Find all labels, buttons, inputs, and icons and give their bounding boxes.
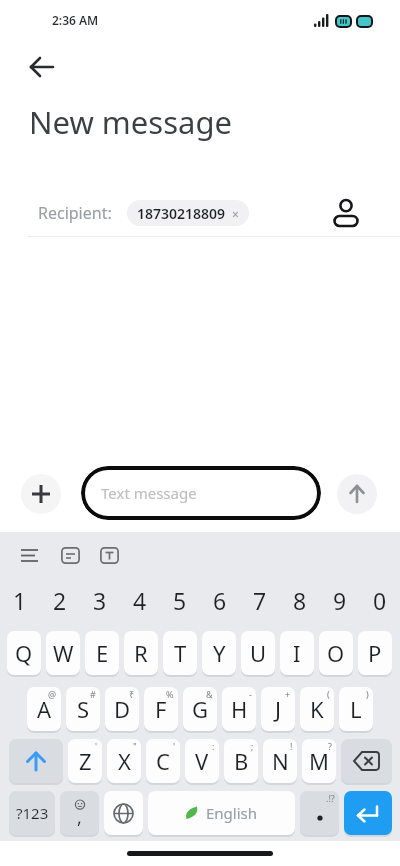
button[interactable]: .!? bbox=[300, 791, 339, 835]
staticText: I bbox=[293, 638, 301, 668]
staticText: Z bbox=[79, 746, 92, 776]
button[interactable]: 4 bbox=[120, 580, 160, 620]
staticText: ? bbox=[328, 740, 332, 752]
button[interactable] bbox=[127, 851, 273, 856]
button[interactable]: ( bbox=[300, 687, 334, 731]
staticText: ' bbox=[95, 740, 98, 752]
staticText: 2:36 AM bbox=[52, 12, 99, 28]
staticText: H bbox=[231, 694, 248, 724]
button[interactable]: - bbox=[222, 687, 256, 731]
button[interactable]: + bbox=[261, 687, 295, 731]
button[interactable] bbox=[92, 542, 126, 568]
button[interactable] bbox=[337, 474, 377, 514]
button[interactable]: ?123 bbox=[9, 791, 55, 835]
staticText: N bbox=[272, 746, 289, 776]
button[interactable]: " bbox=[107, 739, 141, 783]
button[interactable]: I bbox=[280, 631, 314, 675]
staticText: J bbox=[275, 694, 282, 724]
button[interactable] bbox=[104, 791, 143, 835]
staticText: ) bbox=[366, 688, 369, 700]
button[interactable] bbox=[328, 192, 364, 232]
staticText: 9 bbox=[333, 585, 347, 616]
staticText: .!? bbox=[326, 792, 335, 804]
button[interactable]: English bbox=[148, 791, 295, 835]
button[interactable]: 6 bbox=[200, 580, 240, 620]
button[interactable]: P bbox=[358, 631, 392, 675]
button[interactable]: ; bbox=[224, 739, 258, 783]
button[interactable] bbox=[344, 791, 392, 835]
button[interactable]: % bbox=[144, 687, 178, 731]
staticText: # bbox=[90, 688, 96, 700]
button[interactable]: ₹ bbox=[105, 687, 139, 731]
button[interactable]: 0 bbox=[360, 580, 400, 620]
button[interactable]: & bbox=[183, 687, 217, 731]
staticText: : bbox=[212, 740, 215, 752]
button[interactable]: ) bbox=[339, 687, 373, 731]
staticText: F bbox=[155, 694, 167, 724]
button[interactable]: 18730218809 bbox=[127, 200, 249, 226]
button[interactable]: W bbox=[46, 631, 80, 675]
staticText: 0 bbox=[373, 585, 387, 616]
button[interactable] bbox=[53, 542, 87, 568]
staticText: 8 bbox=[293, 585, 307, 616]
staticText: M bbox=[309, 746, 329, 776]
staticText: ( bbox=[327, 688, 330, 700]
staticText: 2 bbox=[53, 585, 67, 616]
button[interactable]: @ bbox=[27, 687, 61, 731]
button[interactable]: Text message bbox=[81, 466, 321, 520]
staticText: % bbox=[166, 688, 174, 700]
button[interactable]: Q bbox=[7, 631, 41, 675]
button[interactable] bbox=[22, 48, 62, 86]
button[interactable]: 5 bbox=[160, 580, 200, 620]
button[interactable]: R bbox=[124, 631, 158, 675]
button[interactable]: ? bbox=[302, 739, 336, 783]
button[interactable]: # bbox=[66, 687, 100, 731]
staticText: & bbox=[206, 688, 213, 700]
button[interactable]: , bbox=[60, 791, 99, 835]
staticText: , bbox=[77, 805, 82, 830]
staticText: ?123 bbox=[16, 803, 49, 823]
staticText: @ bbox=[48, 688, 57, 700]
button[interactable]: 7 bbox=[240, 580, 280, 620]
staticText: 7 bbox=[253, 585, 267, 616]
button[interactable]: 9 bbox=[320, 580, 360, 620]
button[interactable]: T bbox=[163, 631, 197, 675]
staticText: D bbox=[114, 694, 131, 724]
staticText: 6 bbox=[213, 585, 227, 616]
staticText: Y bbox=[213, 638, 226, 668]
button[interactable]: O bbox=[319, 631, 353, 675]
button[interactable] bbox=[341, 739, 392, 783]
button[interactable]: ' bbox=[68, 739, 102, 783]
button[interactable]: 1 bbox=[0, 580, 40, 620]
button[interactable]: ! bbox=[263, 739, 297, 783]
staticText: A bbox=[37, 694, 52, 724]
button[interactable]: U bbox=[241, 631, 275, 675]
button[interactable]: ' bbox=[146, 739, 180, 783]
staticText: W bbox=[53, 638, 74, 668]
staticText: E bbox=[96, 638, 109, 668]
button[interactable]: E bbox=[85, 631, 119, 675]
staticText: T bbox=[174, 638, 187, 668]
staticText: S bbox=[77, 694, 90, 724]
staticText: Recipient: bbox=[38, 202, 112, 224]
staticText: + bbox=[285, 688, 291, 700]
button[interactable] bbox=[21, 474, 61, 514]
staticText: 5 bbox=[173, 585, 187, 616]
staticText: R bbox=[134, 638, 148, 668]
staticText: 1 bbox=[13, 585, 27, 616]
staticText: C bbox=[156, 746, 170, 776]
button[interactable]: Y bbox=[202, 631, 236, 675]
staticText: X bbox=[118, 746, 131, 776]
staticText: ; bbox=[251, 740, 254, 752]
staticText: English bbox=[206, 803, 258, 823]
staticText: Q bbox=[15, 638, 33, 668]
button[interactable] bbox=[12, 542, 46, 568]
button[interactable]: 8 bbox=[280, 580, 320, 620]
button[interactable]: 2 bbox=[40, 580, 80, 620]
button[interactable]: 3 bbox=[80, 580, 120, 620]
staticText: 18730218809 bbox=[137, 204, 226, 223]
staticText: G bbox=[192, 694, 209, 724]
button[interactable]: : bbox=[185, 739, 219, 783]
button[interactable] bbox=[9, 739, 63, 783]
staticText: L bbox=[350, 694, 362, 724]
